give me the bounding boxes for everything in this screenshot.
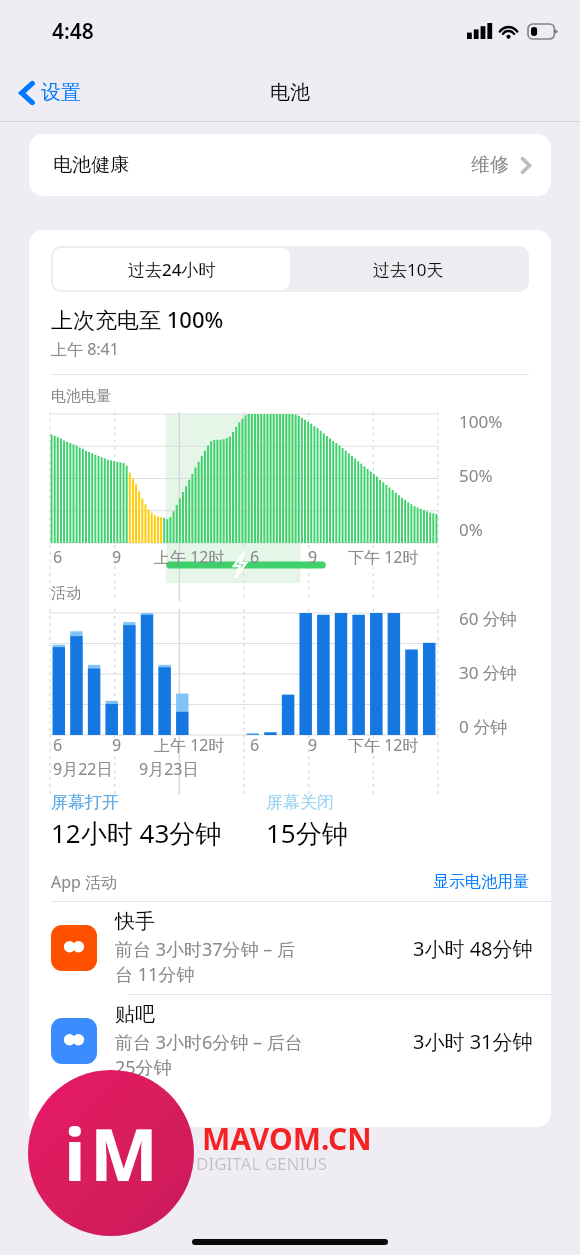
- button[interactable]: 电池健康: [29, 134, 551, 196]
- staticText: 过去10天: [373, 258, 444, 281]
- staticText: 100%: [459, 410, 503, 433]
- staticText: 9: [112, 734, 122, 756]
- staticText: 0%: [459, 518, 483, 541]
- staticText: App 活动: [51, 871, 118, 893]
- staticText: 贴吧: [115, 1002, 155, 1027]
- staticText: M: [90, 1104, 158, 1202]
- staticText: 9: [112, 546, 122, 568]
- button[interactable]: 过去24小时: [53, 248, 290, 290]
- staticText: i: [64, 1104, 86, 1202]
- staticText: 显示电池用量: [433, 872, 529, 892]
- staticText: 电池电量: [51, 387, 111, 406]
- staticText: 上午 12时: [154, 546, 225, 568]
- staticText: 快手: [115, 909, 155, 934]
- staticText: 60 分钟: [459, 607, 517, 630]
- staticText: 屏幕关闭: [266, 792, 334, 813]
- staticText: 3小时 48分钟: [413, 935, 533, 962]
- staticText: 上午 12时: [154, 734, 225, 756]
- button[interactable]: 过去10天: [290, 248, 527, 290]
- button[interactable]: 贴吧: [29, 995, 551, 1087]
- staticText: 6: [250, 546, 260, 568]
- staticText: 9月22日: [53, 758, 113, 780]
- staticText: 6: [53, 546, 63, 568]
- staticText: 9: [308, 546, 318, 568]
- staticText: 25分钟: [115, 1055, 172, 1080]
- button[interactable]: 设置: [14, 76, 87, 109]
- staticText: 9月23日: [139, 758, 199, 780]
- staticText: MAVOM.CN: [202, 1118, 372, 1159]
- staticText: 0 分钟: [459, 715, 508, 738]
- staticText: 6: [53, 734, 63, 756]
- staticText: 上次充电至 100%: [51, 304, 224, 334]
- staticText: 15分钟: [266, 815, 348, 851]
- staticText: 维修: [471, 153, 509, 177]
- staticText: 6: [250, 734, 260, 756]
- staticText: 12小时 43分钟: [51, 815, 222, 851]
- staticText: 9: [308, 734, 318, 756]
- button[interactable]: 显示电池用量: [433, 872, 529, 892]
- staticText: 上午 8:41: [51, 338, 119, 360]
- staticText: 前台 3小时37分钟 – 后: [115, 937, 295, 962]
- staticText: 30 分钟: [459, 661, 517, 684]
- staticText: 台 11分钟: [115, 962, 195, 987]
- staticText: 设置: [41, 80, 81, 105]
- button[interactable]: 快手: [29, 902, 551, 994]
- staticText: 下午 12时: [348, 546, 419, 568]
- staticText: 50%: [459, 464, 493, 487]
- staticText: 电池: [270, 80, 310, 105]
- staticText: DIGITAL GENIUS: [196, 1152, 328, 1175]
- staticText: 过去24小时: [128, 258, 216, 281]
- staticText: 3小时 31分钟: [413, 1028, 533, 1055]
- staticText: 活动: [51, 584, 81, 603]
- staticText: 屏幕打开: [51, 792, 119, 813]
- staticText: 前台 3小时6分钟 – 后台: [115, 1030, 303, 1055]
- staticText: 4:48: [52, 17, 94, 46]
- staticText: 下午 12时: [348, 734, 419, 756]
- staticText: 电池健康: [53, 153, 129, 177]
